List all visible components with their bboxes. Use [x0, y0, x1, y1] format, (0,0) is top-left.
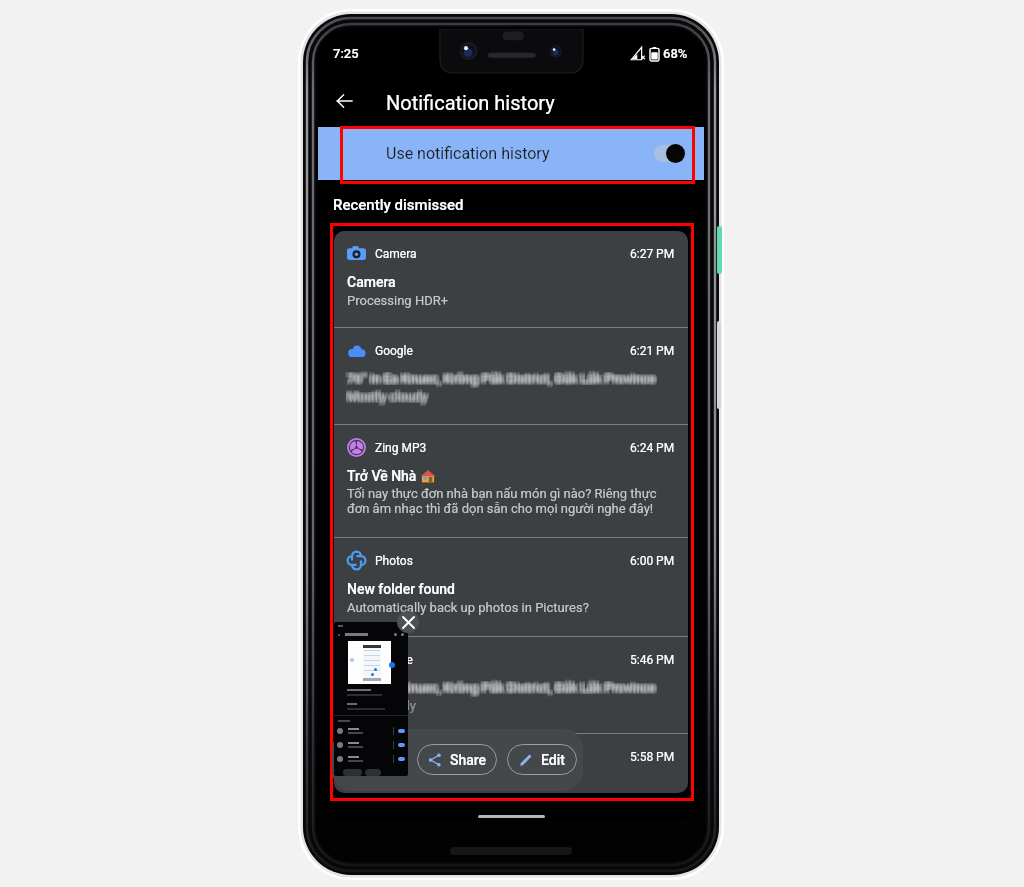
button[interactable]: Google: [334, 637, 688, 733]
staticText: 76° in Ea Knuec, Krông Pắk District, Đắk…: [346, 372, 655, 387]
staticText: 32° in Ea Knuec, Krông Pắk District, Đắk…: [349, 678, 658, 693]
staticText: 76° in Ea Knuec, Krông Pắk District, Đắk…: [349, 370, 658, 385]
staticText: Mostly cloudy: [349, 389, 430, 404]
staticText: Mostly cloudy: [347, 391, 428, 406]
staticText: 32° in Ea Knuec, Krông Pắk District, Đắk…: [348, 678, 657, 693]
staticText: 32° in Ea Knuec, Krông Pắk District, Đắk…: [346, 681, 655, 696]
staticText: Mostly cloudy: [349, 391, 430, 406]
staticText: 76° in Ea Knuec, Krông Pắk District, Đắk…: [345, 370, 654, 385]
staticText: 76° in Ea Knuec, Krông Pắk District, Đắk…: [347, 369, 656, 384]
staticText: 32° in Ea Knuec, Krông Pắk District, Đắk…: [349, 682, 658, 697]
staticText: 32° in Ea Knuec, Krông Pắk District, Đắk…: [348, 681, 657, 696]
staticText: 76° in Ea Knuec, Krông Pắk District, Đắk…: [348, 369, 657, 384]
staticText: 76° in Ea Knuec, Krông Pắk District, Đắk…: [345, 369, 654, 384]
staticText: 32° in Ea Knuec, Krông Pắk District, Đắk…: [347, 682, 656, 697]
staticText: 32° in Ea Knuec, Krông Pắk District, Đắk…: [348, 680, 657, 695]
staticText: 76° in Ea Knuec, Krông Pắk District, Đắk…: [349, 372, 658, 387]
staticText: Mostly cloudy: [345, 390, 426, 405]
staticText: Share: [450, 752, 487, 768]
staticText: Mostly cloudy: [349, 388, 430, 403]
staticText: Mostly cloudy: [349, 387, 430, 402]
staticText: Mostly cloudy: [345, 389, 426, 404]
staticText: Google: [375, 653, 413, 667]
staticText: 76° in Ea Knuec, Krông Pắk District, Đắk…: [349, 369, 658, 384]
staticText: Photos: [375, 554, 413, 568]
staticText: 6:00 PM: [630, 554, 675, 568]
staticText: 32° in Ea Knuec, Krông Pắk District, Đắk…: [347, 678, 656, 693]
staticText: 76° in Ea Knuec, Krông Pắk District, Đắk…: [348, 370, 657, 385]
staticText: Mostly cloudy: [348, 387, 429, 402]
staticText: 76° in Ea Knuec, Krông Pắk District, Đắk…: [345, 373, 654, 388]
staticText: 32° · Cloudy: [347, 698, 416, 713]
button[interactable]: Zing MP3: [334, 425, 688, 537]
staticText: 76° in Ea Knuec, Krông Pắk District, Đắk…: [347, 373, 656, 388]
staticText: Mostly cloudy: [349, 391, 430, 406]
button[interactable]: Screenshot preview: [334, 622, 408, 776]
staticText: 32° in Ea Knuec, Krông Pắk District, Đắk…: [345, 678, 654, 693]
staticText: Automatically back up photos in Pictures…: [347, 600, 589, 615]
staticText: Mostly cloudy: [348, 389, 429, 404]
staticText: Trở Về Nhà: [347, 468, 420, 484]
staticText: Google: [375, 344, 413, 358]
staticText: 76° in Ea Knuec, Krông Pắk District, Đắk…: [345, 373, 654, 388]
staticText: Mostly cloudy: [347, 388, 428, 403]
staticText: 32° in Ea Knuec, Krông Pắk District, Đắk…: [349, 680, 658, 695]
staticText: Mostly cloudy: [345, 388, 426, 403]
staticText: 76° in Ea Knuec, Krông Pắk District, Đắk…: [348, 372, 657, 387]
button[interactable]: Photos: [334, 538, 688, 636]
staticText: đơn âm nhạc thì đã dọn sẵn cho mọi người…: [347, 501, 654, 516]
staticText: 32° in Ea Knuec, Krông Pắk District, Đắk…: [346, 678, 655, 693]
staticText: Mostly cloudy: [346, 387, 427, 402]
staticText: Gmail: [375, 750, 407, 764]
staticText: 76° in Ea Knuec, Krông Pắk District, Đắk…: [349, 371, 658, 386]
staticText: Mostly cloudy: [346, 388, 427, 403]
staticText: 32° in Ea Knuec, Krông Pắk District, Đắk…: [345, 680, 654, 695]
staticText: 32° in Ea Knuec, Krông Pắk District, Đắk…: [348, 682, 657, 697]
staticText: 76° in Ea Knuec, Krông Pắk District, Đắk…: [345, 371, 654, 386]
staticText: 6:27 PM: [630, 247, 675, 261]
staticText: 32° in Ea Knuec, Krông Pắk District, Đắk…: [345, 680, 654, 695]
staticText: 32° in Ea Knuec, Krông Pắk District, Đắk…: [349, 678, 658, 693]
button[interactable]: Google: [334, 328, 688, 424]
button[interactable]: Use notification history: [318, 127, 704, 180]
staticText: 5:58 PM: [630, 750, 675, 764]
staticText: 32° in Ea Knuec, Krông Pắk District, Đắk…: [349, 680, 658, 695]
button[interactable]: Gmail: [334, 734, 688, 792]
staticText: Notification history: [386, 91, 555, 114]
button[interactable]: Camera: [334, 231, 688, 327]
staticText: 76° in Ea Knuec, Krông Pắk District, Đắk…: [346, 370, 655, 385]
staticText: Mostly cloudy: [349, 390, 430, 405]
staticText: Use notification history: [386, 144, 550, 163]
staticText: Recently dismissed: [333, 196, 464, 214]
staticText: 76° in Ea Knuec, Krông Pắk District, Đắk…: [347, 371, 656, 386]
button[interactable]: Edit: [507, 744, 577, 775]
staticText: 76° in Ea Knuec, Krông Pắk District, Đắk…: [345, 372, 654, 387]
staticText: 76° in Ea Knuec, Krông Pắk District, Đắk…: [348, 373, 657, 388]
staticText: 76° in Ea Knuec, Krông Pắk District, Đắk…: [346, 369, 655, 384]
staticText: Tối nay thực đơn nhà bạn nấu món gì nào?…: [347, 486, 657, 501]
button[interactable]: Back: [328, 85, 360, 117]
staticText: Mostly cloudy: [345, 391, 426, 406]
staticText: Mostly cloudy: [347, 387, 428, 402]
staticText: 32° in Ea Knuec, Krông Pắk District, Đắk…: [345, 678, 654, 693]
staticText: 76° in Ea Knuec, Krông Pắk District, Đắk…: [349, 373, 658, 388]
staticText: 5:46 PM: [630, 653, 675, 667]
staticText: 76° in Ea Knuec, Krông Pắk District, Đắk…: [347, 370, 656, 385]
staticText: Mostly cloudy: [345, 391, 426, 406]
staticText: Mostly cloudy: [348, 390, 429, 405]
staticText: Zing MP3: [375, 441, 427, 455]
staticText: 32° in Ea Knuec, Krông Pắk District, Đắk…: [348, 679, 657, 694]
staticText: Mostly cloudy: [348, 391, 429, 406]
staticText: 32° in Ea Knuec, Krông Pắk District, Đắk…: [345, 681, 654, 696]
button[interactable]: Share: [417, 744, 497, 775]
staticText: Mostly cloudy: [346, 389, 427, 404]
staticText: 32° in Ea Knuec, Krông Pắk District, Đắk…: [346, 680, 655, 695]
staticText: Processing HDR+: [347, 293, 449, 308]
staticText: Mostly cloudy: [345, 387, 426, 402]
staticText: 76° in Ea Knuec, Krông Pắk District, Đắk…: [349, 370, 658, 385]
staticText: New folder found: [347, 581, 455, 597]
button[interactable]: Dismiss screenshot: [397, 611, 419, 633]
staticText: 76° in Ea Knuec, Krông Pắk District, Đắk…: [349, 369, 658, 384]
staticText: 32° in Ea Knuec, Krông Pắk District, Đắk…: [347, 679, 656, 694]
staticText: Mostly cloudy: [347, 390, 428, 405]
